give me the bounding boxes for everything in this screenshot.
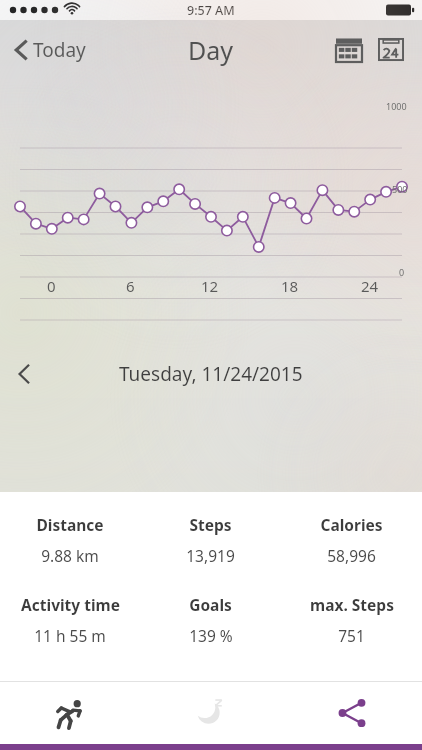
button[interactable]: Month view bbox=[330, 32, 368, 68]
button[interactable]: Steps bbox=[140, 512, 281, 568]
staticText: 6 bbox=[126, 276, 135, 296]
staticText: Calories bbox=[320, 514, 383, 535]
staticText: Tuesday, 11/24/2015 bbox=[119, 361, 303, 387]
staticText: 0 bbox=[47, 276, 56, 296]
button[interactable]: Previous day bbox=[10, 355, 39, 393]
staticText: 18 bbox=[281, 276, 299, 296]
staticText: Today bbox=[33, 37, 86, 63]
button[interactable]: Today bbox=[8, 31, 92, 69]
button[interactable]: max. Steps bbox=[281, 592, 422, 648]
button[interactable]: Goals bbox=[140, 592, 281, 648]
staticText: 11 h 55 m bbox=[34, 625, 106, 646]
staticText: Goals bbox=[189, 594, 232, 615]
button[interactable]: Sleep bbox=[140, 682, 281, 744]
staticText: 9:57 AM bbox=[187, 2, 235, 19]
staticText: Day bbox=[188, 33, 234, 67]
button[interactable]: Distance bbox=[0, 512, 140, 568]
staticText: 13,919 bbox=[186, 545, 235, 566]
staticText: 9.88 km bbox=[41, 545, 99, 566]
staticText: Steps bbox=[189, 514, 232, 535]
staticText: 1000 bbox=[386, 100, 407, 112]
staticText: 0 bbox=[399, 266, 405, 278]
button[interactable]: Activity bbox=[0, 682, 140, 744]
button[interactable]: Calories bbox=[281, 512, 422, 568]
staticText: 751 bbox=[338, 625, 365, 646]
staticText: max. Steps bbox=[310, 594, 394, 615]
button[interactable]: Day view bbox=[372, 32, 410, 68]
staticText: 500 bbox=[392, 183, 408, 195]
staticText: 24 bbox=[361, 276, 379, 296]
button[interactable]: Activity time bbox=[0, 592, 140, 648]
staticText: 139 % bbox=[189, 625, 233, 646]
staticText: 12 bbox=[201, 276, 219, 296]
staticText: Distance bbox=[36, 514, 104, 535]
staticText: Activity time bbox=[21, 594, 120, 615]
button[interactable]: Share bbox=[281, 682, 422, 744]
staticText: 58,996 bbox=[327, 545, 376, 566]
